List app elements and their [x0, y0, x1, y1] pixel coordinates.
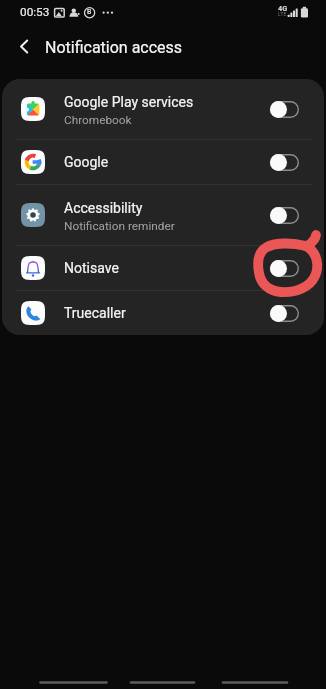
button[interactable]: Notisave — [2, 246, 324, 290]
staticText: Google — [64, 154, 109, 170]
staticText: Notification access — [45, 38, 183, 57]
button[interactable]: Toggle — [270, 154, 299, 171]
staticText: Notification reminder — [64, 219, 175, 233]
staticText: Google Play services — [64, 94, 194, 110]
staticText: LTE — [278, 11, 287, 17]
staticText: Chromebook — [64, 113, 132, 127]
button[interactable]: Back — [8, 30, 41, 63]
button[interactable]: Google Play services — [2, 79, 324, 139]
staticText: 00:53 — [20, 5, 50, 19]
button[interactable]: Toggle — [270, 260, 299, 277]
button[interactable]: Truecaller — [2, 291, 324, 335]
staticText: Notisave — [64, 260, 119, 276]
button[interactable]: Google — [2, 140, 324, 184]
button[interactable]: Toggle — [270, 305, 299, 322]
staticText: Accessibility — [64, 200, 143, 216]
button[interactable]: Toggle — [270, 101, 299, 118]
staticText: Truecaller — [64, 305, 126, 321]
button[interactable]: Toggle — [270, 207, 299, 224]
staticText: 4G — [278, 4, 288, 13]
staticText: B — [87, 8, 92, 16]
button[interactable]: Accessibility — [2, 185, 324, 245]
